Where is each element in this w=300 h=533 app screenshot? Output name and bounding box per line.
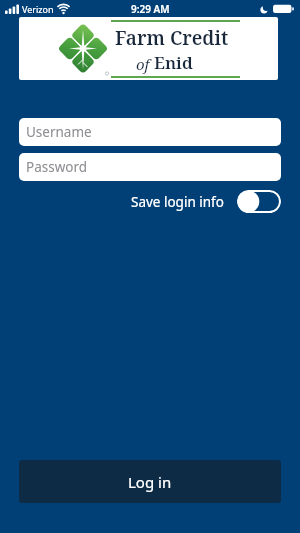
button[interactable]: Password	[19, 153, 281, 181]
staticText: Password	[26, 158, 88, 176]
staticText: Enid	[154, 51, 193, 74]
staticText: Save login info	[131, 193, 224, 211]
button[interactable]: Log in	[19, 460, 281, 503]
staticText: Verizon	[22, 3, 54, 15]
button[interactable]	[237, 190, 281, 213]
staticText: of	[136, 54, 154, 74]
button[interactable]: Username	[19, 118, 281, 146]
staticText: 9:29 AM	[131, 2, 170, 16]
staticText: Log in	[128, 472, 172, 492]
staticText: Farm Credit	[115, 25, 229, 51]
staticText: Username	[26, 123, 92, 141]
